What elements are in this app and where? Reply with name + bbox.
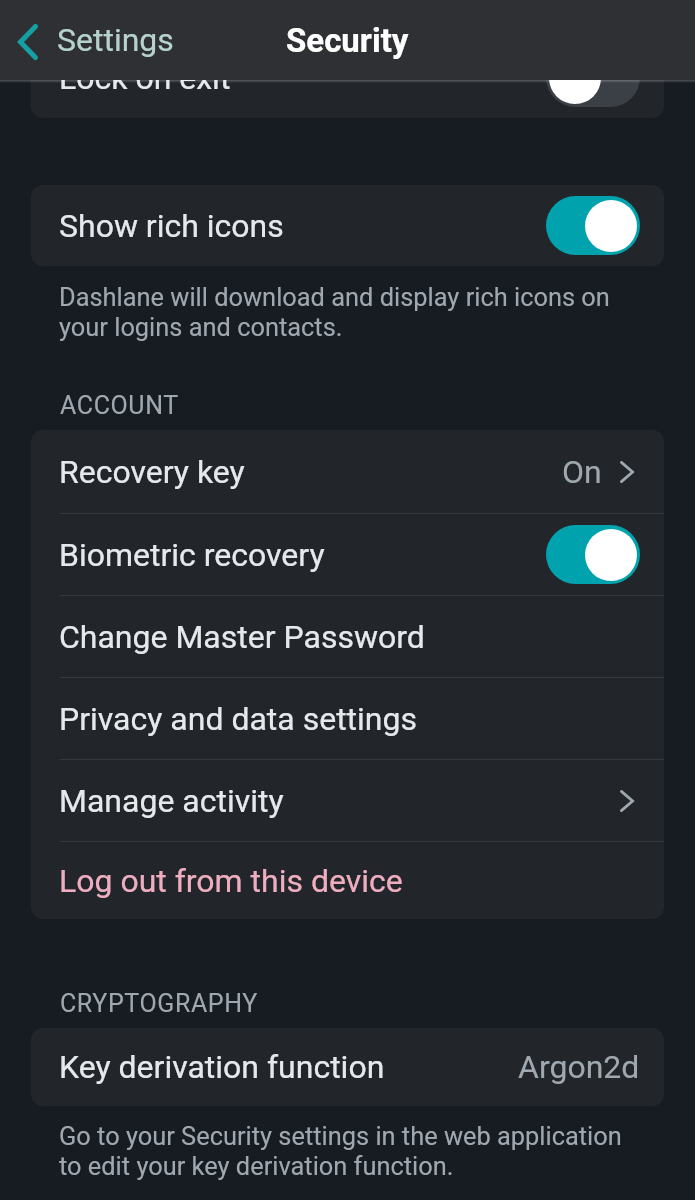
button[interactable]: Change Master Password (31, 596, 664, 677)
staticText: Argon2d (518, 1048, 640, 1086)
button[interactable]: Lock on exit (31, 37, 664, 118)
staticText: Settings (57, 21, 174, 59)
staticText: Privacy and data settings (59, 700, 640, 738)
staticText: On (562, 453, 602, 491)
staticText: CRYPTOGRAPHY (60, 989, 258, 1018)
button[interactable]: Biometric recovery (31, 514, 664, 595)
staticText: Security (286, 21, 409, 60)
button[interactable]: Toggle on (546, 196, 640, 255)
staticText: Go to your Security settings in the web … (59, 1121, 640, 1181)
staticText: Dashlane will download and display rich … (59, 282, 640, 342)
button[interactable]: Toggle on (546, 525, 640, 584)
staticText: Lock on exit (59, 59, 546, 97)
button[interactable]: Settings (0, 16, 186, 64)
staticText: Change Master Password (59, 618, 640, 656)
button[interactable]: Log out from this device (31, 842, 664, 919)
staticText: Recovery key (59, 453, 562, 491)
button[interactable]: Key derivation function (31, 1028, 664, 1106)
button[interactable]: Show rich icons (31, 185, 664, 266)
button[interactable]: Toggle off (546, 48, 640, 107)
staticText: Log out from this device (59, 862, 640, 900)
button[interactable]: Manage activity (31, 760, 664, 841)
staticText: Biometric recovery (59, 536, 546, 574)
staticText: Show rich icons (59, 207, 546, 245)
button[interactable]: Privacy and data settings (31, 678, 664, 759)
staticText: Key derivation function (59, 1048, 518, 1086)
staticText: Manage activity (59, 782, 620, 820)
button[interactable]: Recovery key (31, 430, 664, 513)
staticText: ACCOUNT (60, 391, 179, 420)
